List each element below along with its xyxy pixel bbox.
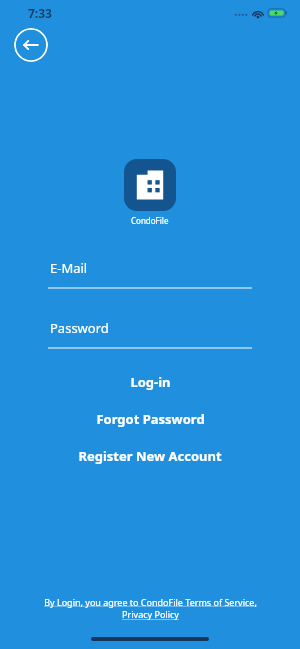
- staticText: Log-in: [130, 373, 171, 391]
- button[interactable]: Forgot Password: [0, 405, 300, 433]
- staticText: CondoFile: [131, 215, 169, 226]
- staticText: E-Mail: [50, 259, 88, 277]
- staticText: By Login, you agree to CondoFile Terms o…: [44, 596, 257, 621]
- button[interactable]: CondoFile logo: [124, 159, 176, 211]
- button[interactable]: Log-in: [0, 368, 300, 396]
- staticText: 7:33: [28, 5, 52, 21]
- staticText: Password: [50, 319, 109, 337]
- staticText: Forgot Password: [96, 410, 205, 428]
- button[interactable]: Register New Account: [0, 442, 300, 470]
- button[interactable]: Password: [48, 319, 252, 349]
- staticText: Register New Account: [78, 447, 222, 465]
- button[interactable]: By Login, you agree to CondoFile Terms o…: [24, 596, 276, 621]
- button[interactable]: E-Mail: [48, 259, 252, 289]
- button[interactable]: Back: [14, 28, 48, 62]
